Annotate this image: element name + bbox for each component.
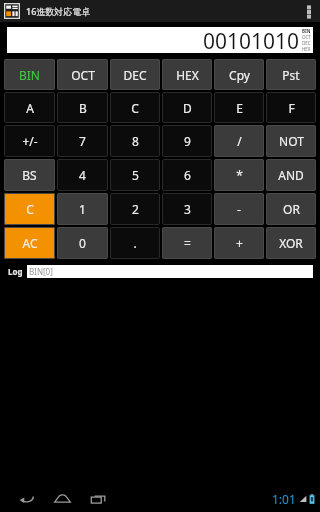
staticText: 2 [132, 201, 139, 217]
staticText: / [237, 133, 242, 149]
staticText: BIN[0] [29, 266, 53, 277]
button[interactable]: B [57, 92, 108, 123]
staticText: AND [278, 167, 304, 183]
button[interactable]: HEX [162, 59, 212, 90]
staticText: HEX [176, 67, 199, 83]
staticText: BIN [302, 28, 311, 34]
button[interactable]: C [110, 92, 160, 123]
button[interactable]: Back [12, 485, 40, 512]
button[interactable]: 7 [57, 125, 108, 157]
button[interactable]: OCT [57, 59, 108, 90]
button[interactable]: 4 [57, 159, 108, 191]
button[interactable]: . [110, 227, 160, 259]
staticText: OCT [71, 67, 95, 83]
staticText: +/- [22, 133, 38, 149]
button[interactable]: BS [4, 159, 55, 191]
staticText: - [237, 201, 241, 217]
button[interactable]: Home [48, 485, 76, 512]
staticText: 1 [79, 201, 86, 217]
staticText: C [131, 100, 139, 116]
button[interactable]: 3 [162, 193, 212, 225]
staticText: BS [22, 167, 37, 183]
button[interactable]: D [162, 92, 212, 123]
staticText: 6 [184, 167, 191, 183]
staticText: Log [8, 266, 23, 277]
staticText: Cpy [229, 67, 250, 83]
staticText: 4 [79, 167, 86, 183]
staticText: * [236, 167, 243, 183]
button[interactable]: 5 [110, 159, 160, 191]
button[interactable]: A [4, 92, 55, 123]
button[interactable]: BIN[0] [27, 265, 313, 278]
button[interactable]: NOT [266, 125, 316, 157]
button[interactable]: = [162, 227, 212, 259]
staticText: XOR [279, 235, 303, 251]
staticText: DEC [302, 40, 311, 46]
staticText: HEX [302, 46, 311, 52]
button[interactable]: + [214, 227, 264, 259]
staticText: D [183, 100, 192, 116]
button[interactable]: F [266, 92, 316, 123]
staticText: B [79, 100, 87, 116]
button[interactable]: OR [266, 193, 316, 225]
button[interactable]: 8 [110, 125, 160, 157]
staticText: 16進数対応電卓 [26, 5, 91, 17]
button[interactable]: Cpy [214, 59, 264, 90]
button[interactable]: / [214, 125, 264, 157]
button[interactable]: C [4, 193, 55, 225]
staticText: = [184, 235, 191, 251]
button[interactable]: 00101010 [7, 27, 313, 53]
staticText: 9 [184, 133, 191, 149]
button[interactable]: - [214, 193, 264, 225]
staticText: 0 [79, 235, 86, 251]
button[interactable]: XOR [266, 227, 316, 259]
button[interactable]: * [214, 159, 264, 191]
staticText: + [236, 235, 243, 251]
staticText: A [26, 100, 34, 116]
button[interactable]: 6 [162, 159, 212, 191]
staticText: BIN [19, 67, 40, 83]
button[interactable]: BIN [4, 59, 55, 90]
staticText: DEC [123, 67, 147, 83]
staticText: 1:01 [272, 491, 296, 507]
staticText: 3 [184, 201, 191, 217]
staticText: 00101010 [202, 27, 299, 53]
staticText: Pst [282, 67, 300, 83]
staticText: E [236, 100, 243, 116]
staticText: C [26, 201, 34, 217]
button[interactable]: Recent apps [84, 485, 112, 512]
button[interactable]: 1 [57, 193, 108, 225]
staticText: OR [283, 201, 300, 217]
button[interactable]: More options [298, 0, 320, 22]
staticText: . [133, 235, 137, 251]
button[interactable]: 2 [110, 193, 160, 225]
staticText: 7 [79, 133, 86, 149]
button[interactable]: 0 [57, 227, 108, 259]
staticText: OCT [302, 34, 311, 40]
button[interactable]: Pst [266, 59, 316, 90]
button[interactable]: AND [266, 159, 316, 191]
button[interactable]: +/- [4, 125, 55, 157]
button[interactable]: 9 [162, 125, 212, 157]
button[interactable]: AC [4, 227, 55, 259]
staticText: 8 [132, 133, 139, 149]
staticText: NOT [279, 133, 304, 149]
staticText: AC [22, 235, 38, 251]
button[interactable]: DEC [110, 59, 160, 90]
staticText: 5 [132, 167, 139, 183]
button[interactable]: E [214, 92, 264, 123]
staticText: F [288, 100, 295, 116]
